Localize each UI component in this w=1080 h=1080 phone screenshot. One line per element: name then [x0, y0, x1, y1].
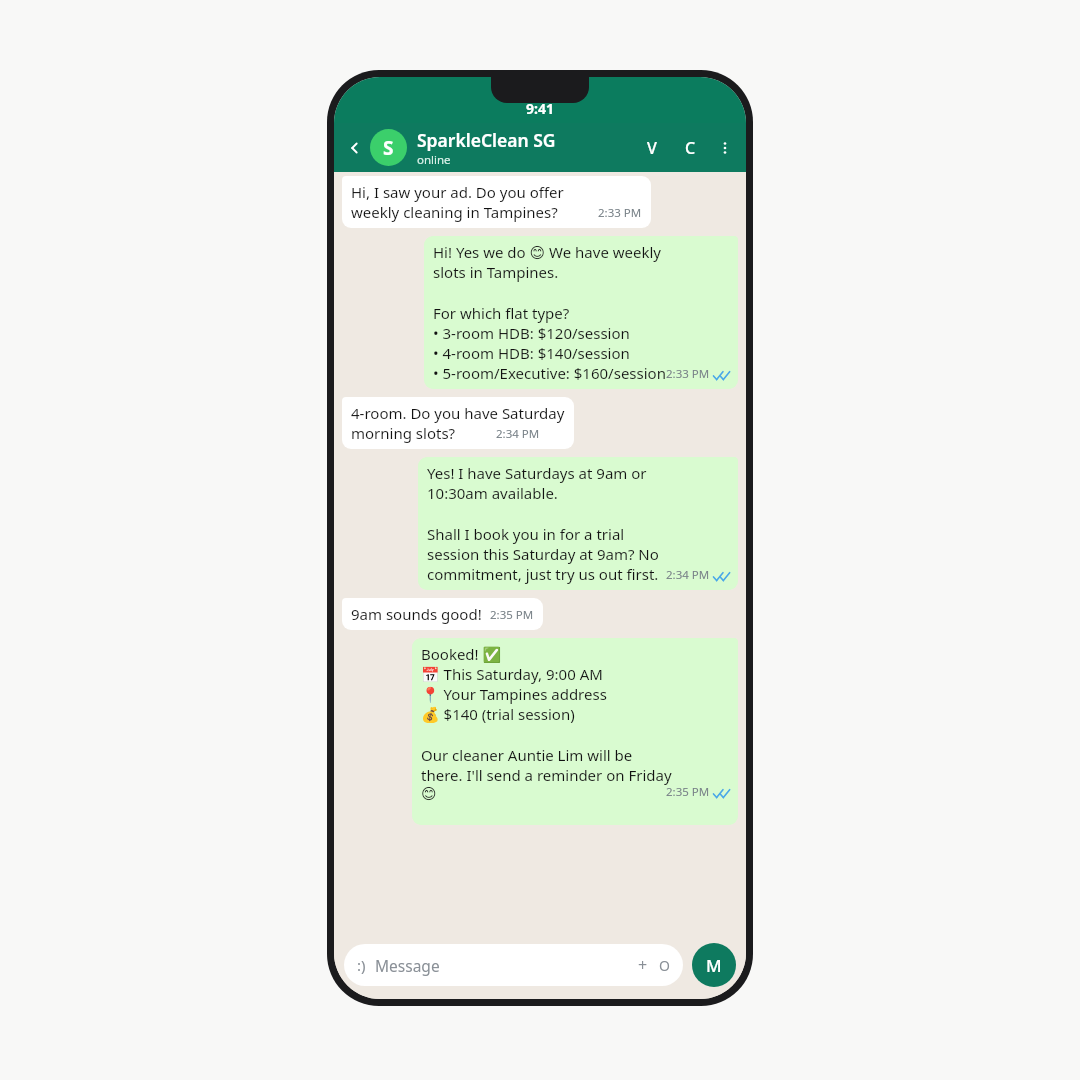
- button[interactable]: :): [344, 944, 683, 986]
- staticText: Our cleaner Auntie Lim will be: [421, 745, 633, 765]
- staticText: Yes! I have Saturdays at 9am or: [427, 463, 647, 483]
- staticText: S: [383, 135, 394, 161]
- staticText: SparkleClean SG: [417, 128, 556, 152]
- staticText: • 3-room HDB: $120/session: [433, 323, 630, 343]
- staticText: 2:35 PM: [490, 607, 534, 623]
- button[interactable]: Send voice message: [692, 943, 736, 987]
- button[interactable]: 9am sounds good!: [342, 598, 543, 630]
- staticText: there. I'll send a reminder on Friday: [421, 765, 672, 785]
- staticText: 9am sounds good!: [351, 604, 482, 624]
- staticText: 2:35 PM: [666, 784, 710, 800]
- button[interactable]: Back: [342, 135, 368, 161]
- staticText: • 5-room/Executive: $160/session: [433, 363, 666, 383]
- button[interactable]: Contact avatar: [370, 129, 407, 166]
- staticText: online: [417, 152, 451, 168]
- staticText: Booked! ✅: [421, 644, 502, 664]
- staticText: 😊: [421, 785, 437, 802]
- staticText: commitment, just try us out first.: [427, 564, 659, 584]
- staticText: V: [647, 137, 657, 159]
- staticText: 2:34 PM: [496, 426, 540, 442]
- staticText: • 4-room HDB: $140/session: [433, 343, 630, 363]
- staticText: Shall I book you in for a trial: [427, 524, 625, 544]
- button[interactable]: 4-room. Do you have Saturday: [342, 397, 574, 449]
- button[interactable]: More options: [712, 135, 738, 161]
- button[interactable]: Hi! Yes we do 😊 We have weekly: [424, 236, 738, 389]
- staticText: 4-room. Do you have Saturday: [351, 403, 565, 423]
- staticText: 2:33 PM: [598, 205, 642, 221]
- button[interactable]: SparkleClean SG: [417, 128, 640, 168]
- button[interactable]: Booked! ✅: [412, 638, 738, 825]
- staticText: For which flat type?: [433, 303, 570, 323]
- staticText: slots in Tampines.: [433, 262, 559, 282]
- staticText: +: [638, 954, 648, 976]
- staticText: weekly cleaning in Tampines?: [351, 202, 558, 222]
- button[interactable]: Hi, I saw your ad. Do you offer: [342, 176, 651, 228]
- staticText: M: [706, 954, 722, 977]
- staticText: 10:30am available.: [427, 483, 558, 503]
- staticText: 9:41: [526, 99, 554, 118]
- button[interactable]: Yes! I have Saturdays at 9am or: [418, 457, 738, 590]
- staticText: Message: [375, 955, 440, 976]
- staticText: Hi, I saw your ad. Do you offer: [351, 182, 564, 202]
- staticText: session this Saturday at 9am? No: [427, 544, 659, 564]
- staticText: 📅 This Saturday, 9:00 AM: [421, 664, 603, 684]
- staticText: C: [685, 137, 696, 159]
- staticText: morning slots?: [351, 423, 456, 443]
- staticText: O: [659, 956, 670, 975]
- staticText: :): [357, 955, 366, 975]
- button[interactable]: Video call: [640, 136, 664, 160]
- staticText: 📍 Your Tampines address: [421, 684, 607, 704]
- button[interactable]: Voice call: [678, 136, 702, 160]
- staticText: 2:33 PM: [666, 366, 710, 382]
- staticText: Hi! Yes we do 😊 We have weekly: [433, 242, 662, 262]
- staticText: 2:34 PM: [666, 567, 710, 583]
- staticText: 💰 $140 (trial session): [421, 704, 575, 724]
